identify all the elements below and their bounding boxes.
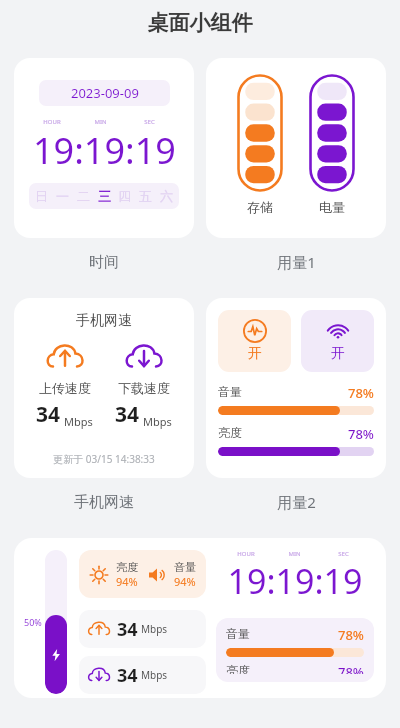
staticText: 二 [77,188,90,204]
staticText: MIN [270,550,319,558]
staticText: 94% [174,574,196,589]
staticText: 亮度 [116,560,138,574]
staticText: 电量 [319,199,345,215]
button[interactable]: 存储 [206,58,386,238]
staticText: Mbps [143,414,172,429]
staticText: HOUR [28,118,76,126]
staticText: 时间 [89,253,119,272]
staticText: 用量2 [277,492,316,512]
staticText: 开 [331,345,345,363]
button[interactable]: Wi-Fi on [301,310,374,372]
staticText: Mbps [64,414,93,429]
staticText: 34 [115,400,140,429]
staticText: 上传速度 [39,380,91,396]
staticText: 用量1 [277,252,316,272]
staticText: 34 [117,617,138,642]
staticText: 2023-09-09 [71,84,139,102]
staticText: 三 [98,188,111,204]
staticText: SEC [319,550,368,558]
staticText: 音量 [226,626,250,641]
staticText: 34 [117,663,138,688]
button[interactable]: 手机网速 [14,298,194,478]
staticText: SEC [125,118,174,126]
staticText: 日 [35,188,48,204]
staticText: Mbps [141,668,168,682]
staticText: 50% [24,616,42,628]
staticText: 78% [338,663,364,674]
staticText: 19:19:19 [216,558,374,604]
staticText: 一 [56,188,69,204]
staticText: 手机网速 [76,312,132,330]
button[interactable]: Sound on [206,298,386,478]
staticText: 手机网速 [74,493,134,512]
staticText: 桌面小组件 [0,10,400,36]
button[interactable]: 50% [14,538,386,698]
staticText: 音量 [218,384,242,399]
button[interactable]: 2023-09-09 [14,58,194,238]
staticText: MIN [76,118,125,126]
staticText: 更新于 03/15 14:38:33 [14,452,194,466]
staticText: 四 [118,188,131,204]
button[interactable]: Sound on [218,310,291,372]
staticText: 六 [160,188,173,204]
staticText: 下载速度 [118,380,170,396]
staticText: 存储 [247,199,273,215]
staticText: 亮度 [226,663,250,674]
staticText: 78% [348,425,374,443]
staticText: 开 [248,345,262,363]
staticText: 19:19:19 [33,126,176,175]
staticText: Mbps [141,622,168,636]
staticText: 78% [348,384,374,402]
staticText: 五 [139,188,152,204]
staticText: 音量 [174,560,196,574]
staticText: 94% [116,574,138,589]
staticText: 34 [36,400,61,429]
button[interactable]: 亮度 [79,550,206,598]
staticText: HOUR [222,550,270,558]
staticText: 78% [338,626,364,644]
staticText: 亮度 [218,425,242,440]
